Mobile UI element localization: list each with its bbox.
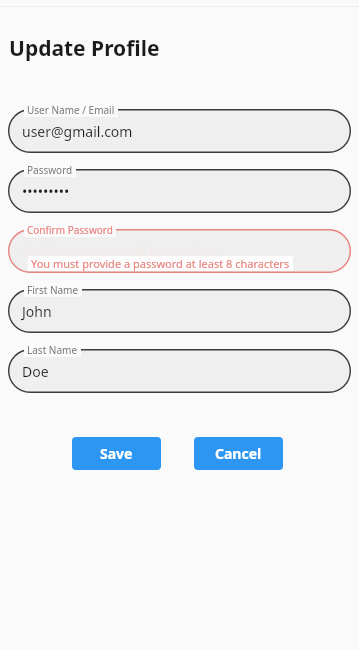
staticText: Last Name <box>27 343 78 357</box>
button[interactable]: user@gmail.com <box>8 101 351 153</box>
staticText: Doe <box>22 362 49 381</box>
staticText: Confirm Password <box>27 223 113 237</box>
staticText: ••••••••• <box>22 182 70 201</box>
staticText: Password <box>27 163 73 177</box>
staticText: Update Profile <box>9 34 160 63</box>
staticText: user@gmail.com <box>22 122 133 141</box>
button[interactable]: John <box>8 281 351 333</box>
button[interactable]: Save <box>72 437 161 470</box>
button[interactable]: Doe <box>8 341 351 393</box>
button[interactable]: ••••••••• <box>8 161 351 213</box>
button[interactable]: Cancel <box>194 437 283 470</box>
staticText: You must provide a password at least 8 c… <box>31 256 290 271</box>
staticText: Cancel <box>215 444 262 463</box>
staticText: User Name / Email <box>27 103 115 117</box>
staticText: Save <box>100 444 133 463</box>
button[interactable]: Re-Enter password to confirm <box>8 221 351 273</box>
staticText: Re-Enter password to confirm <box>22 242 218 261</box>
staticText: John <box>22 302 52 321</box>
staticText: First Name <box>27 283 79 297</box>
